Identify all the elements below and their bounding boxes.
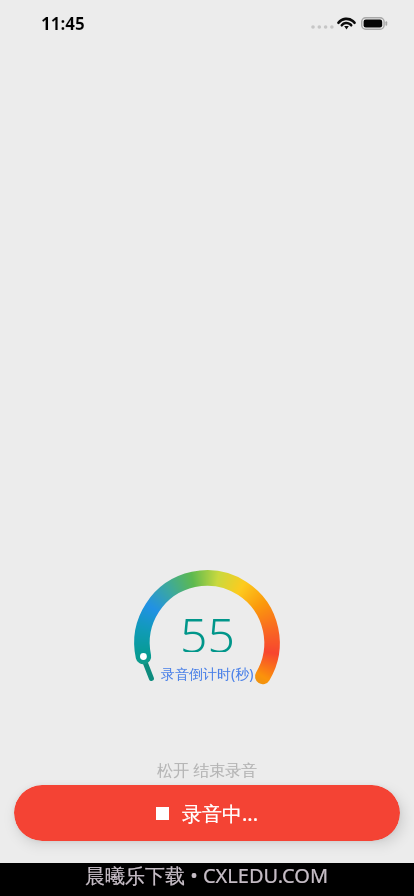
staticText: 晨曦乐下载 • CXLEDU.COM [85,862,329,889]
staticText: 55 [180,602,235,652]
staticText: 松开 结束录音 [157,759,258,781]
button[interactable]: 录音中... [14,785,400,841]
staticText: 11:45 [41,12,85,35]
other: Wi-Fi [338,17,355,30]
staticText: 录音中... [182,800,259,827]
other: Cellular signal [311,18,332,30]
other: Battery full [361,17,388,30]
staticText: 录音倒计时(秒) [161,664,254,683]
button[interactable]: 录音倒计时 55 秒 [107,543,307,743]
